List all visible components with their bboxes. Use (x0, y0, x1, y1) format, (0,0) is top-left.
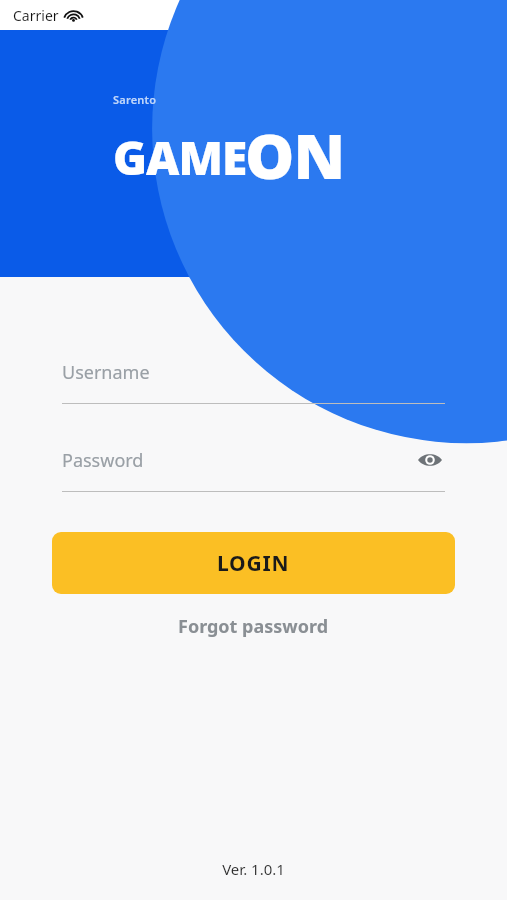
button[interactable]: Username (62, 355, 445, 404)
button[interactable]: Forgot password (162, 608, 345, 645)
staticText: GAME (113, 126, 247, 189)
button[interactable]: LOGIN (52, 532, 455, 594)
button[interactable]: Password (62, 443, 445, 492)
button[interactable]: Show password (415, 445, 445, 475)
staticText: Carrier (13, 6, 59, 25)
staticText: Forgot password (178, 614, 329, 639)
staticText: Username (62, 360, 150, 385)
staticText: ON (245, 113, 345, 197)
staticText: Sarento (113, 92, 157, 107)
staticText: Password (62, 448, 144, 473)
staticText: Ver. 1.0.1 (222, 859, 285, 879)
staticText: LOGIN (217, 549, 290, 578)
